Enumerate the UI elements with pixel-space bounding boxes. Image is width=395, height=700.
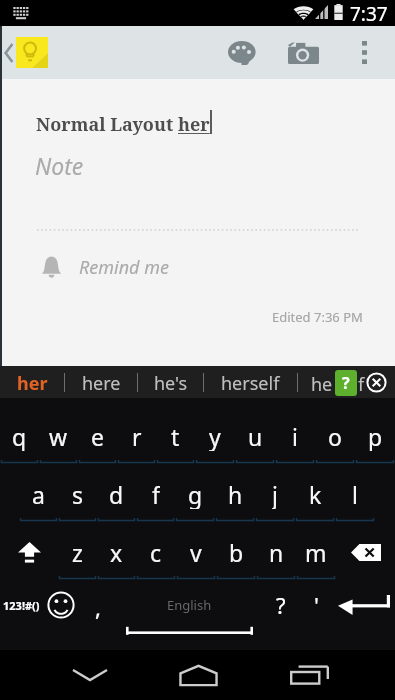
button[interactable]: r	[117, 421, 156, 451]
staticText: ?	[276, 590, 286, 620]
staticText: c	[150, 537, 162, 567]
button[interactable]: he	[298, 366, 395, 398]
button[interactable]: Take photo	[280, 26, 326, 79]
staticText: l	[352, 479, 358, 509]
button[interactable]: Navigate up	[0, 26, 56, 79]
button[interactable]: Recent apps	[265, 650, 353, 700]
button[interactable]: here	[65, 366, 137, 398]
staticText: r	[132, 421, 142, 451]
button[interactable]: z	[58, 537, 97, 567]
staticText: m	[305, 537, 327, 567]
staticText: ,	[95, 592, 101, 622]
staticText: j	[272, 479, 278, 509]
staticText: e	[91, 421, 104, 451]
button[interactable]: a	[19, 479, 58, 509]
staticText: 7:37	[350, 1, 388, 27]
button[interactable]: Space	[116, 574, 263, 652]
button[interactable]: ?	[263, 574, 299, 652]
button[interactable]: l	[335, 479, 375, 509]
staticText: h	[228, 479, 243, 509]
button[interactable]: b	[216, 537, 256, 567]
staticText: 123!#()	[3, 598, 40, 613]
button[interactable]: g	[175, 479, 215, 509]
button[interactable]: w	[39, 421, 78, 451]
staticText: q	[12, 421, 27, 451]
staticText: p	[368, 421, 383, 451]
button[interactable]: y	[195, 421, 235, 451]
staticText: Note	[35, 150, 84, 181]
staticText: s	[72, 479, 84, 509]
staticText: ?	[342, 372, 350, 394]
staticText: he's	[154, 371, 188, 396]
staticText: v	[190, 537, 202, 567]
staticText: g	[188, 479, 203, 509]
staticText: b	[229, 537, 244, 567]
staticText: n	[269, 537, 284, 567]
staticText: y	[209, 421, 221, 451]
button[interactable]: '	[299, 574, 333, 652]
staticText: i	[292, 421, 298, 451]
button[interactable]: Symbols	[0, 574, 42, 652]
button[interactable]: v	[176, 537, 216, 567]
button[interactable]: o	[315, 421, 355, 451]
staticText: a	[32, 479, 45, 509]
button[interactable]: her	[0, 366, 64, 398]
staticText: t	[171, 421, 180, 451]
staticText: '	[314, 590, 319, 620]
button[interactable]: More options	[341, 26, 387, 79]
button[interactable]: k	[295, 479, 335, 509]
button[interactable]: m	[296, 537, 336, 567]
button[interactable]: p	[355, 421, 395, 451]
button[interactable]: q	[0, 421, 39, 451]
staticText: x	[110, 537, 123, 567]
button[interactable]: s	[58, 479, 97, 509]
button[interactable]: j	[255, 479, 295, 509]
button[interactable]: Backspace	[336, 537, 395, 567]
button[interactable]: Remind me	[0, 248, 395, 286]
staticText: her	[17, 371, 48, 396]
staticText: z	[72, 537, 83, 567]
staticText: he	[311, 372, 333, 397]
button[interactable]: u	[235, 421, 275, 451]
staticText: Normal Layout	[36, 112, 178, 137]
staticText: k	[309, 479, 322, 509]
button[interactable]: Enter	[333, 574, 395, 652]
button[interactable]: Shift	[0, 537, 58, 567]
button[interactable]: he's	[138, 366, 203, 398]
button[interactable]: Emoji	[42, 574, 80, 652]
staticText: English	[167, 596, 212, 614]
button[interactable]: e	[78, 421, 117, 451]
staticText: w	[49, 421, 68, 451]
button[interactable]: h	[215, 479, 255, 509]
button[interactable]: Hide keyboard	[46, 650, 134, 700]
staticText: her	[178, 112, 210, 137]
staticText: here	[82, 371, 121, 396]
button[interactable]: i	[275, 421, 315, 451]
staticText: Remind me	[79, 255, 169, 280]
staticText: Edited 7:36 PM	[272, 308, 363, 326]
staticText: f	[358, 372, 365, 397]
button[interactable]: Change colour	[220, 26, 266, 79]
staticText: d	[109, 479, 124, 509]
button[interactable]: d	[97, 479, 136, 509]
button[interactable]: c	[136, 537, 176, 567]
button[interactable]: x	[97, 537, 136, 567]
staticText: u	[248, 421, 263, 451]
button[interactable]: t	[156, 421, 195, 451]
staticText: herself	[221, 371, 280, 396]
button[interactable]: n	[256, 537, 296, 567]
button[interactable]: Home	[154, 650, 242, 700]
button[interactable]: herself	[204, 366, 297, 398]
button[interactable]: f	[136, 479, 175, 509]
staticText: o	[328, 421, 342, 451]
staticText: f	[152, 479, 160, 509]
button[interactable]: ,	[80, 574, 116, 652]
